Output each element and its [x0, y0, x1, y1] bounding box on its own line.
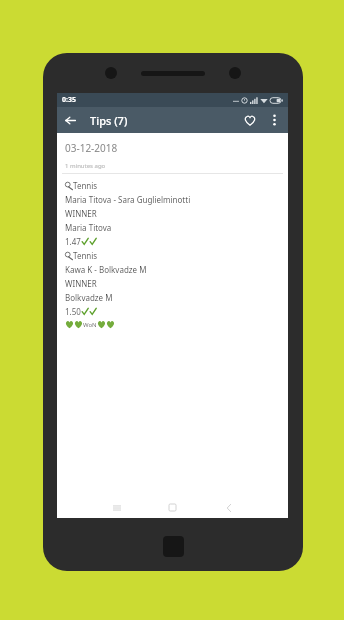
- button[interactable]: Favorite: [237, 107, 263, 133]
- staticText: ...: [233, 95, 239, 105]
- button[interactable]: Back: [218, 497, 239, 518]
- staticText: 03-12-2018: [65, 141, 118, 155]
- button[interactable]: Home: [162, 497, 183, 518]
- button[interactable]: Recent apps: [106, 497, 127, 518]
- staticText: Maria Titova - Sara Guglielminotti: [65, 194, 191, 205]
- staticText: WINNER: [65, 208, 97, 219]
- staticText: Maria Titova: [65, 222, 112, 233]
- staticText: 1 minutes ago: [65, 162, 106, 170]
- staticText: Bolkvadze M: [65, 292, 113, 303]
- staticText: Tennis: [73, 250, 98, 261]
- staticText: WoN: [83, 321, 97, 329]
- staticText: WINNER: [65, 278, 97, 289]
- staticText: Tips (7): [90, 113, 128, 128]
- staticText: Tennis: [73, 180, 98, 191]
- staticText: 1.47: [65, 236, 81, 247]
- button[interactable]: More options: [263, 109, 285, 131]
- staticText: 0:35: [62, 95, 76, 105]
- staticText: Kawa K - Bolkvadze M: [65, 264, 147, 275]
- button[interactable]: Navigate up: [57, 107, 83, 133]
- staticText: 1.50: [65, 306, 81, 317]
